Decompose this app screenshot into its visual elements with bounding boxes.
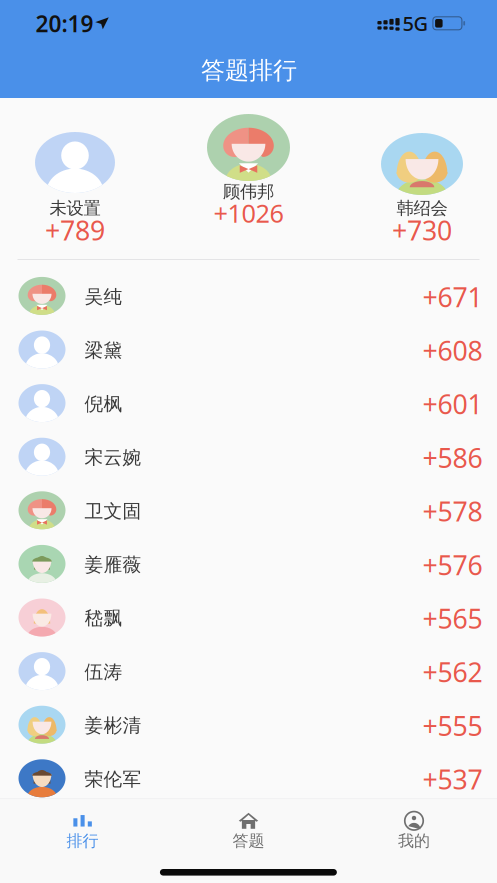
staticText: 我的 [398,831,430,851]
button[interactable]: 姜彬清 [0,699,497,752]
staticText: 荣伦军 [84,768,141,791]
staticText: 顾伟邦 [223,181,274,202]
staticText: +562 [422,654,482,690]
staticText: 卫文固 [84,500,141,523]
button[interactable]: 姜雁薇 [0,538,497,592]
button[interactable]: 荣伦军 [0,752,497,806]
staticText: +1026 [213,196,283,230]
button[interactable]: 卫文固 [0,484,497,538]
button[interactable]: 梁黛 [0,324,497,377]
staticText: +586 [422,440,482,475]
staticText: 梁黛 [84,339,122,362]
button[interactable]: 宋云婉 [0,431,497,484]
staticText: 答题 [232,831,264,851]
staticText: 韩绍会 [396,198,447,219]
button[interactable]: 倪枫 [0,377,497,431]
staticText: 答题排行 [201,56,297,85]
button[interactable]: 未设置 [0,98,497,259]
staticText: +730 [392,212,452,248]
staticText: 姜彬清 [84,714,141,737]
button[interactable]: 吴纯 [0,270,497,324]
staticText: +789 [45,212,105,248]
staticText: 姜雁薇 [84,553,141,576]
button[interactable]: 答题 [0,799,497,883]
button[interactable]: 韩绍会 [0,98,497,259]
staticText: 吴纯 [84,285,122,308]
staticText: 宋云婉 [84,446,141,469]
staticText: 倪枫 [84,392,122,415]
staticText: 嵇飘 [84,607,122,630]
staticText: +671 [422,279,482,314]
staticText: +565 [422,601,482,636]
button[interactable]: 伍涛 [0,645,497,699]
staticText: +555 [422,708,482,743]
button[interactable]: 顾伟邦 [0,98,497,259]
staticText: 未设置 [49,198,100,219]
button[interactable]: 排行 [0,799,497,883]
staticText: +608 [422,333,482,368]
button[interactable]: 我的 [0,799,497,883]
staticText: +601 [422,386,482,422]
button[interactable]: 嵇飘 [0,592,497,645]
staticText: 5G [402,10,428,37]
staticText: +576 [422,547,482,582]
staticText: 伍涛 [84,660,122,683]
staticText: 排行 [67,831,99,851]
staticText: 20:19 [35,8,93,38]
staticText: +537 [422,761,482,797]
staticText: +578 [422,493,482,529]
